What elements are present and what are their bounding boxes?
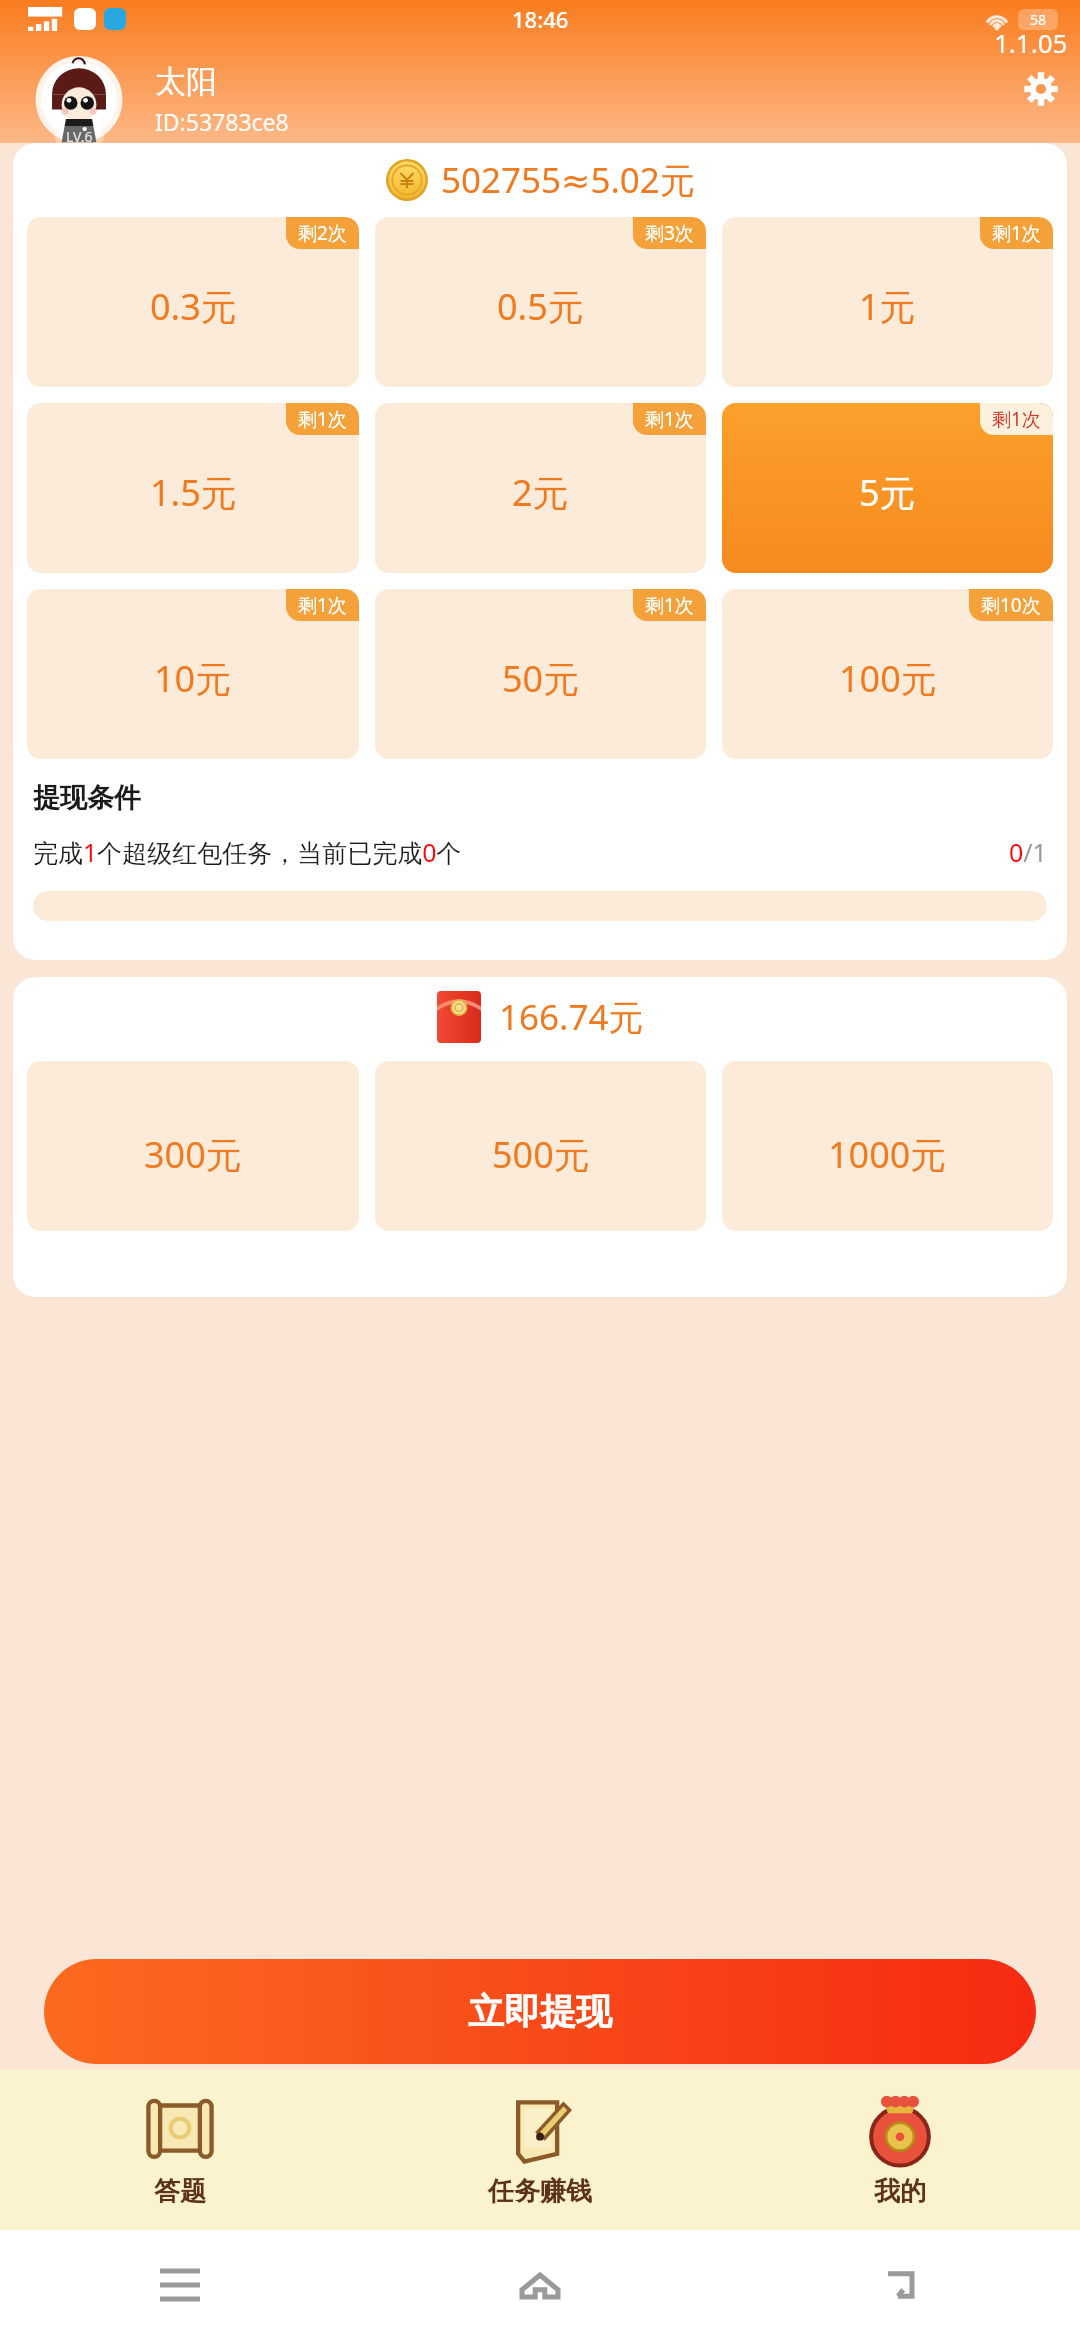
button[interactable]: 剩3次 bbox=[375, 217, 706, 387]
button[interactable]: 剩1次 bbox=[27, 403, 359, 573]
staticText: 300元 bbox=[144, 1130, 242, 1179]
staticText: 剩1次 bbox=[645, 406, 694, 432]
button[interactable]: 剩1次 bbox=[722, 217, 1053, 387]
button[interactable]: Settings bbox=[1020, 68, 1062, 110]
button[interactable]: 剩1次 bbox=[722, 403, 1053, 573]
button[interactable]: LV.6 bbox=[25, 56, 133, 143]
button[interactable]: 答题 bbox=[0, 2070, 360, 2230]
staticText: 0.3元 bbox=[150, 282, 237, 331]
button[interactable]: 我的 bbox=[720, 2070, 1080, 2230]
staticText: 10元 bbox=[154, 654, 232, 703]
staticText: 立即提现 bbox=[468, 1989, 612, 2034]
staticText: 剩1次 bbox=[645, 592, 694, 618]
staticText: 任务赚钱 bbox=[488, 2175, 592, 2208]
staticText: 2元 bbox=[512, 468, 569, 517]
staticText: 0/1 bbox=[1009, 835, 1047, 869]
staticText: 剩1次 bbox=[992, 406, 1041, 432]
staticText: 太阳 bbox=[155, 62, 217, 101]
button[interactable]: 立即提现 bbox=[44, 1959, 1036, 2064]
button[interactable]: 剩1次 bbox=[375, 403, 706, 573]
button[interactable]: 剩1次 bbox=[27, 589, 359, 759]
staticText: 剩1次 bbox=[298, 592, 347, 618]
button[interactable]: 剩2次 bbox=[27, 217, 359, 387]
button[interactable]: 1000元 bbox=[722, 1061, 1053, 1231]
staticText: 剩2次 bbox=[298, 220, 347, 246]
staticText: ID:53783ce8 bbox=[155, 106, 289, 137]
staticText: 剩10次 bbox=[981, 592, 1041, 618]
button[interactable]: 500元 bbox=[375, 1061, 706, 1231]
button[interactable]: Home bbox=[360, 2230, 720, 2340]
staticText: 18:46 bbox=[512, 4, 569, 34]
staticText: 58 bbox=[1030, 10, 1047, 29]
staticText: 1000元 bbox=[828, 1130, 947, 1179]
button[interactable]: 剩10次 bbox=[722, 589, 1053, 759]
staticText: 100元 bbox=[839, 654, 937, 703]
button[interactable]: Recents bbox=[0, 2230, 360, 2340]
staticText: 我的 bbox=[874, 2175, 926, 2208]
staticText: 提现条件 bbox=[33, 781, 141, 815]
staticText: 1.5元 bbox=[150, 468, 237, 517]
staticText: 500元 bbox=[492, 1130, 590, 1179]
staticText: 5元 bbox=[859, 468, 916, 517]
button[interactable]: 300元 bbox=[27, 1061, 359, 1231]
button[interactable]: Back bbox=[720, 2230, 1080, 2340]
staticText: 完成1个超级红包任务，当前已完成0个 bbox=[33, 835, 462, 869]
staticText: 1.1.05 bbox=[994, 25, 1068, 60]
staticText: 50元 bbox=[502, 654, 580, 703]
staticText: 剩1次 bbox=[298, 406, 347, 432]
staticText: 剩3次 bbox=[645, 220, 694, 246]
staticText: 答题 bbox=[154, 2175, 206, 2208]
button[interactable]: 任务赚钱 bbox=[360, 2070, 720, 2230]
staticText: 1元 bbox=[859, 282, 916, 331]
staticText: 剩1次 bbox=[992, 220, 1041, 246]
staticText: LV.6 bbox=[66, 127, 93, 146]
staticText: 166.74元 bbox=[499, 993, 644, 1041]
staticText: 0.5元 bbox=[497, 282, 584, 331]
staticText: 502755≈5.02元 bbox=[441, 156, 695, 204]
button[interactable]: 剩1次 bbox=[375, 589, 706, 759]
